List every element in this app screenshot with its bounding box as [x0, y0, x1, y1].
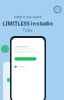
- staticText: Today: [22, 27, 32, 33]
- staticText: LIMITLESS in studio: [2, 20, 52, 27]
- staticText: where you want: [14, 14, 41, 19]
- button[interactable]: Profile: [54, 6, 61, 13]
